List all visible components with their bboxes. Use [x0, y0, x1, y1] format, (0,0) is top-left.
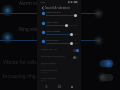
staticText: Ring volume: [19, 26, 46, 32]
button[interactable]: Increasing ring volume: [37, 54, 81, 60]
button[interactable]: Alarm ringtone: [37, 76, 81, 83]
button[interactable]: Do Not Disturb: [37, 61, 81, 68]
button[interactable]: Navigate up: [39, 4, 46, 11]
button[interactable]: Call volume: [37, 20, 81, 30]
staticText: Cosmos: [41, 71, 49, 74]
staticText: Ring volume: [46, 39, 59, 42]
button[interactable]: Ring volume: [37, 38, 81, 48]
staticText: 10:04: [40, 1, 46, 4]
staticText: Increasing ring: [3, 73, 36, 79]
staticText: Media volume: [46, 11, 61, 14]
staticText: Alarm volume: [46, 30, 61, 33]
staticText: Sound & vibration: [45, 6, 70, 10]
button[interactable]: Back: [43, 83, 50, 90]
button[interactable]: Phone ringtone: [37, 68, 81, 75]
staticText: Increasing ring volume: [41, 55, 65, 58]
staticText: Off: [41, 64, 44, 67]
staticText: Helix: [41, 79, 46, 82]
staticText: Vibrate for calls: [3, 59, 37, 65]
staticText: Phone ringtone: [41, 69, 58, 72]
staticText: Alarm ringtone: [41, 77, 57, 80]
staticText: Vibrate for calls: [41, 48, 57, 51]
staticText: Do Not Disturb: [41, 62, 57, 65]
button[interactable]: Alarm volume: [37, 29, 81, 39]
button[interactable]: Home: [56, 83, 63, 90]
staticText: Alarm volume: [19, 0, 50, 6]
button[interactable]: Media volume: [37, 10, 81, 20]
button[interactable]: Recent apps: [68, 83, 75, 90]
staticText: Call volume: [46, 21, 58, 24]
button[interactable]: Vibrate for calls: [37, 47, 81, 53]
